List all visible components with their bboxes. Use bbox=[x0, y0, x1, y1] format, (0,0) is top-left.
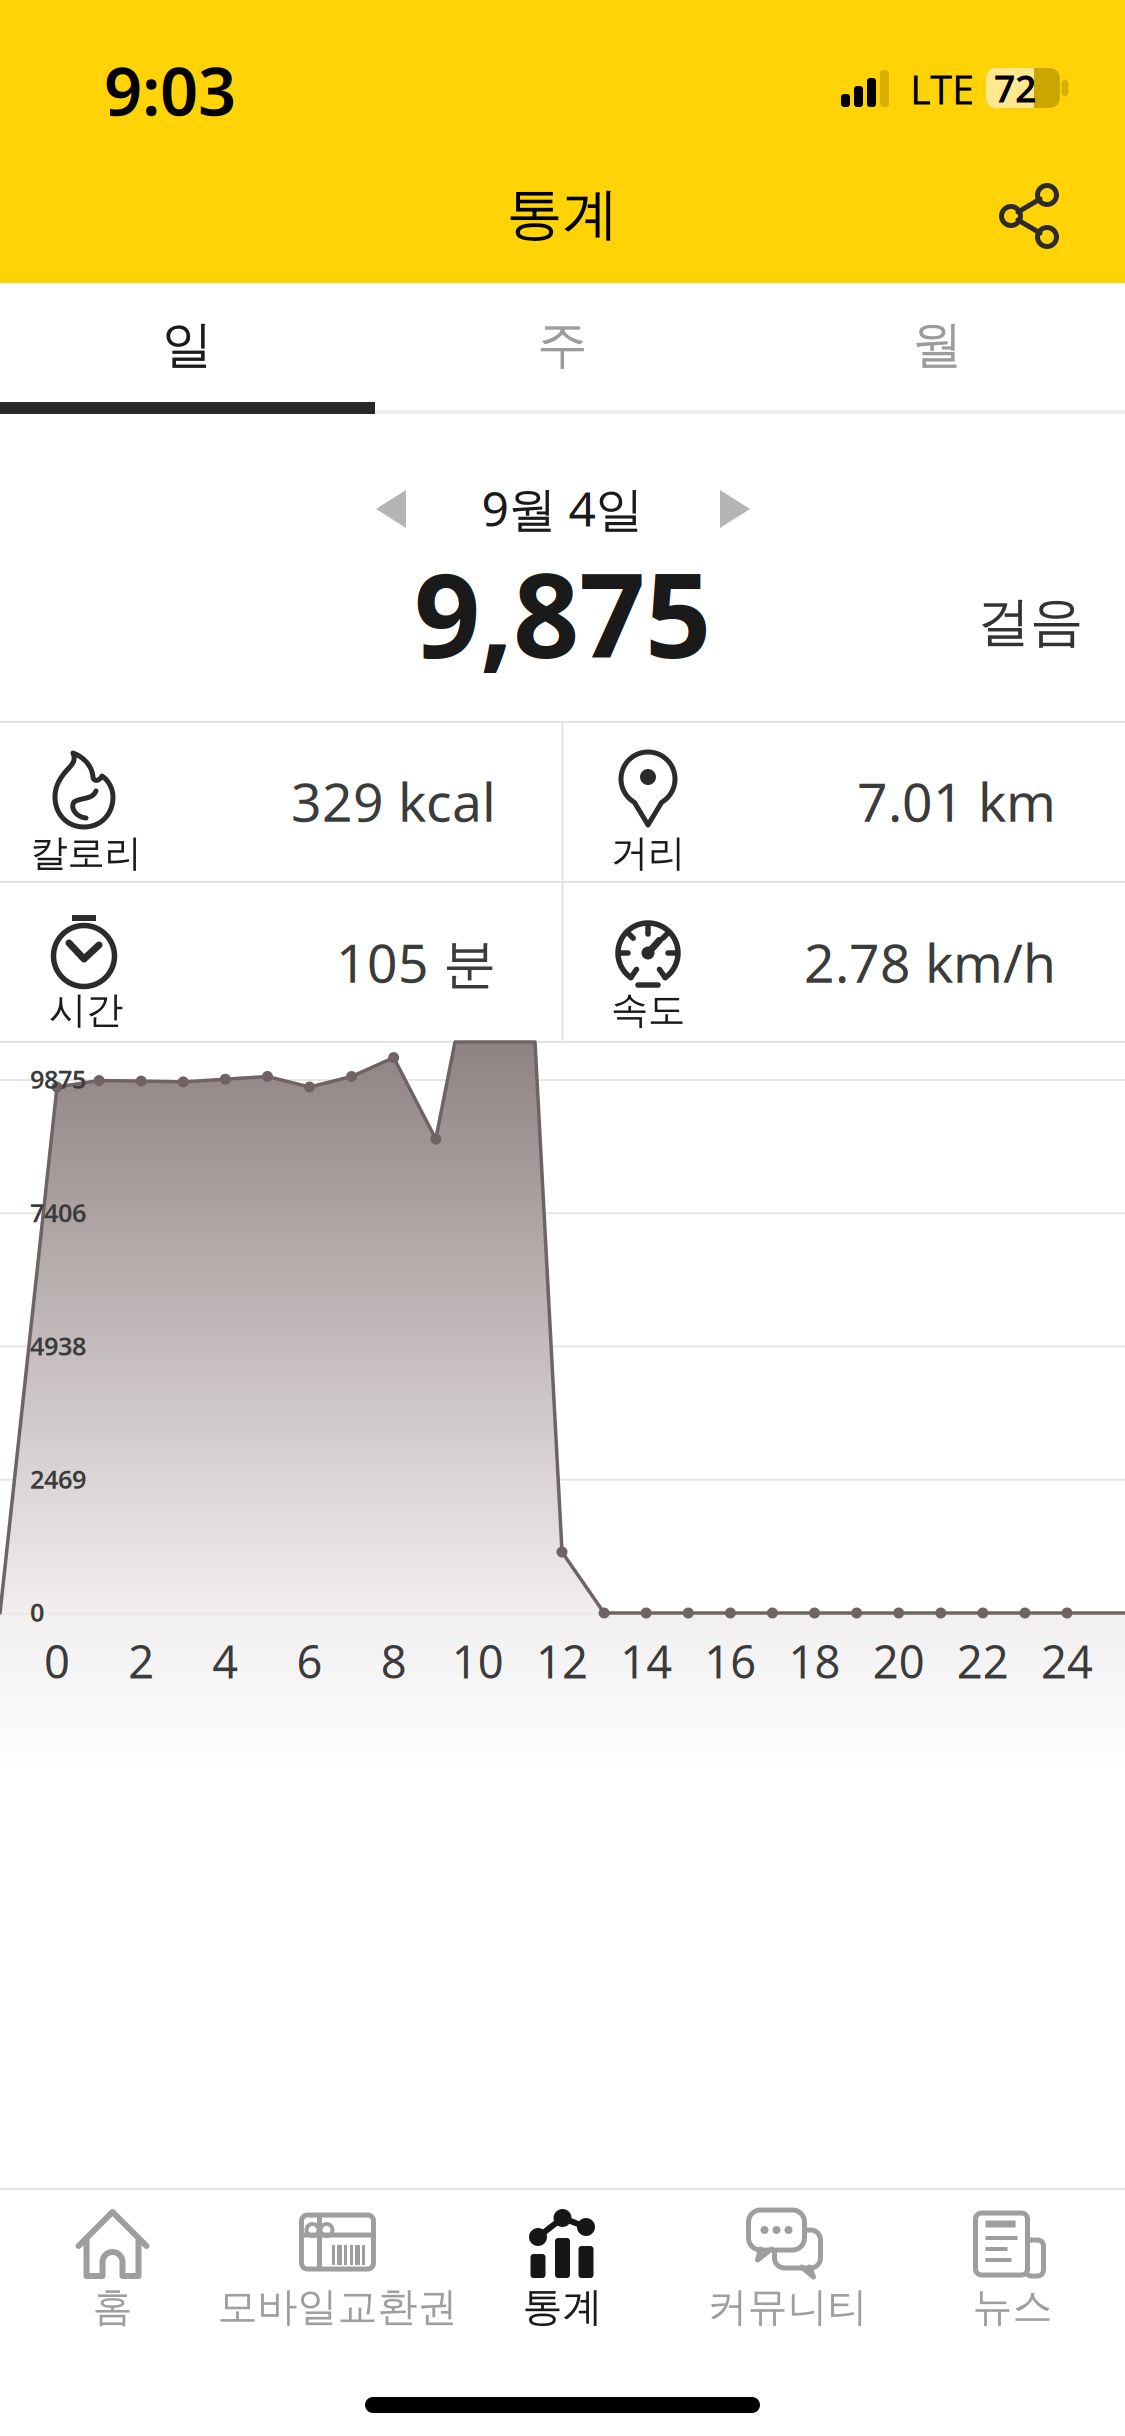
staticText: 커뮤니티 bbox=[707, 2282, 867, 2331]
staticText: 22 bbox=[957, 1631, 1009, 1691]
staticText: LTE bbox=[910, 62, 974, 115]
button[interactable]: 커뮤니티 bbox=[677, 2188, 897, 2436]
staticText: 월 bbox=[912, 314, 963, 376]
button[interactable]: 공유 bbox=[993, 180, 1065, 252]
staticText: 통계 bbox=[522, 2282, 602, 2331]
staticText: 9875 bbox=[30, 1062, 86, 1096]
staticText: 7.01 km bbox=[857, 766, 1056, 836]
staticText: 9:03 bbox=[104, 46, 236, 134]
button[interactable]: 뉴스 bbox=[912, 2188, 1112, 2436]
staticText: 홈 bbox=[92, 2282, 132, 2331]
staticText: 2.78 km/h bbox=[804, 927, 1056, 997]
staticText: 걸음 bbox=[977, 589, 1083, 655]
staticText: 일 bbox=[162, 314, 213, 376]
button[interactable]: 일 bbox=[0, 285, 375, 405]
staticText: 10 bbox=[452, 1631, 504, 1691]
staticText: 16 bbox=[704, 1631, 756, 1691]
staticText: 0 bbox=[30, 1595, 44, 1629]
button[interactable]: 다음 날짜 bbox=[720, 490, 750, 528]
button[interactable]: 홈 bbox=[12, 2188, 212, 2436]
staticText: 칼로리 bbox=[30, 830, 141, 876]
staticText: 72 bbox=[994, 63, 1036, 113]
staticText: 통계 bbox=[506, 180, 618, 248]
staticText: 24 bbox=[1041, 1631, 1093, 1691]
staticText: 9월 4일 bbox=[481, 476, 643, 540]
staticText: 뉴스 bbox=[972, 2282, 1052, 2331]
staticText: 14 bbox=[620, 1631, 672, 1691]
button[interactable]: 주 bbox=[375, 285, 750, 405]
staticText: 거리 bbox=[611, 830, 685, 876]
staticText: 18 bbox=[788, 1631, 840, 1691]
staticText: 모바일교환권 bbox=[217, 2282, 457, 2331]
staticText: 105 분 bbox=[336, 927, 496, 997]
staticText: 9,875 bbox=[414, 536, 711, 690]
button[interactable]: 이전 날짜 bbox=[376, 490, 406, 528]
staticText: 0 bbox=[44, 1631, 70, 1691]
button[interactable]: 월 bbox=[750, 285, 1125, 405]
staticText: 12 bbox=[536, 1631, 588, 1691]
staticText: 시간 bbox=[49, 987, 123, 1033]
staticText: 8 bbox=[381, 1631, 407, 1691]
staticText: 329 kcal bbox=[291, 766, 496, 836]
staticText: 7406 bbox=[30, 1195, 86, 1229]
staticText: 속도 bbox=[611, 987, 685, 1033]
staticText: 2469 bbox=[30, 1462, 86, 1496]
staticText: 20 bbox=[873, 1631, 925, 1691]
staticText: 주 bbox=[537, 314, 588, 376]
staticText: 6 bbox=[296, 1631, 322, 1691]
staticText: 4938 bbox=[30, 1329, 86, 1362]
staticText: 4 bbox=[212, 1631, 238, 1691]
button[interactable]: 모바일교환권 bbox=[207, 2188, 467, 2436]
button[interactable]: 통계 bbox=[462, 2188, 662, 2436]
staticText: 2 bbox=[128, 1631, 154, 1691]
